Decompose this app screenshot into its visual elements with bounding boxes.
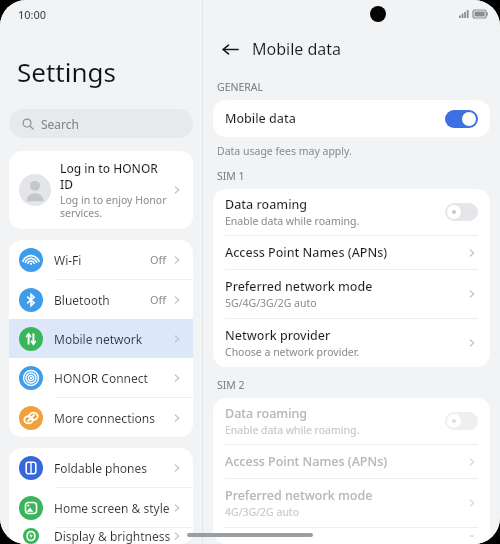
staticText: Bluetooth: [54, 292, 150, 308]
button[interactable]: Preferred network mode: [213, 479, 490, 527]
staticText: Foldable phones: [54, 460, 171, 476]
button[interactable]: Home screen & style: [9, 488, 193, 528]
staticText: Mobile data: [252, 38, 342, 60]
button[interactable]: Data roaming: [213, 189, 490, 235]
staticText: Access Point Names (APNs): [225, 453, 388, 470]
button[interactable]: On: [445, 110, 478, 128]
staticText: 5G/4G/3G/2G auto: [225, 296, 317, 310]
staticText: Preferred network mode: [225, 278, 373, 295]
staticText: Choose a network provider.: [225, 345, 360, 359]
button[interactable]: Back: [217, 36, 243, 62]
button[interactable]: Mobile data: [213, 100, 490, 137]
staticText: SIM 2: [217, 378, 245, 392]
staticText: Display & brightness: [54, 528, 171, 544]
button[interactable]: Access Point Names (APNs): [213, 236, 490, 269]
button[interactable]: Log in to HONOR ID: [9, 151, 193, 229]
button[interactable]: Foldable phones: [9, 448, 193, 488]
button[interactable]: Data roaming: [213, 398, 490, 444]
staticText: More connections: [54, 410, 171, 426]
staticText: GENERAL: [217, 80, 264, 94]
staticText: Data usage fees may apply.: [217, 144, 352, 158]
button[interactable]: Search: [9, 109, 193, 138]
staticText: Home screen & style: [54, 500, 171, 516]
button[interactable]: Display & brightness: [9, 528, 193, 544]
staticText: Wi-Fi: [54, 252, 150, 268]
button[interactable]: Bluetooth: [9, 280, 193, 319]
button[interactable]: Off: [445, 203, 478, 221]
staticText: Enable data while roaming.: [225, 214, 360, 228]
staticText: Access Point Names (APNs): [225, 244, 388, 261]
staticText: Log in to enjoy Honor services.: [60, 193, 171, 220]
button[interactable]: Network provider: [213, 319, 490, 367]
staticText: Data roaming: [225, 405, 308, 422]
staticText: Network provider: [225, 327, 331, 344]
staticText: SIM 1: [217, 169, 245, 183]
button[interactable]: Mobile network: [9, 319, 193, 358]
staticText: HONOR Connect: [54, 370, 171, 386]
staticText: Enable data while roaming.: [225, 423, 360, 437]
staticText: Log in to HONOR ID: [60, 160, 171, 192]
button[interactable]: Wi-Fi: [9, 240, 193, 280]
staticText: Mobile network: [54, 331, 171, 347]
button[interactable]: Network provider: [213, 528, 490, 544]
staticText: 4G/3G/2G auto: [225, 505, 300, 519]
button[interactable]: Off: [445, 412, 478, 430]
staticText: Preferred network mode: [225, 487, 373, 504]
button[interactable]: Preferred network mode: [213, 270, 490, 318]
staticText: 10:00: [18, 7, 47, 22]
staticText: Search: [41, 116, 79, 132]
staticText: Mobile data: [225, 110, 445, 127]
staticText: Data roaming: [225, 196, 308, 213]
staticText: Off: [150, 252, 167, 267]
button[interactable]: Access Point Names (APNs): [213, 445, 490, 478]
button[interactable]: HONOR Connect: [9, 358, 193, 398]
staticText: Settings: [17, 54, 116, 89]
button[interactable]: More connections: [9, 398, 193, 437]
staticText: Off: [150, 292, 167, 307]
